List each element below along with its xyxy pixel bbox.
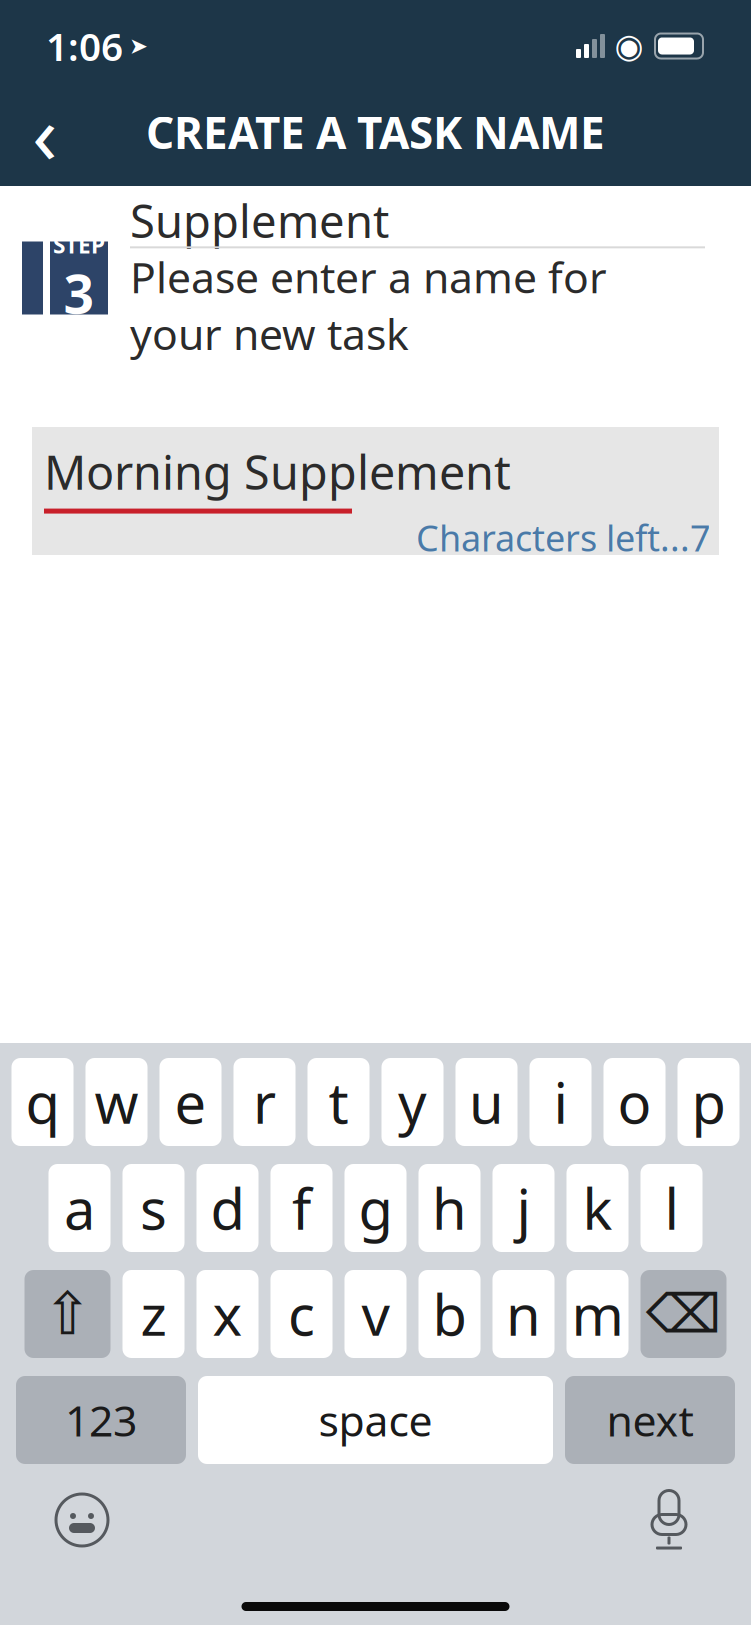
button[interactable]: s	[122, 1164, 184, 1252]
button[interactable]: Back	[8, 92, 82, 172]
staticText: n	[506, 1277, 541, 1351]
staticText: 123	[65, 1392, 137, 1448]
button[interactable]: u	[455, 1058, 517, 1146]
staticText: h	[432, 1171, 467, 1245]
staticText: ⌫	[646, 1284, 721, 1344]
button[interactable]: Morning Supplement	[32, 427, 719, 555]
staticText: space	[318, 1392, 432, 1448]
staticText: Morning Supplement	[44, 441, 511, 503]
button[interactable]: space	[198, 1376, 553, 1464]
button[interactable]: r	[233, 1058, 295, 1146]
staticText: m	[571, 1277, 623, 1351]
staticText: g	[358, 1171, 392, 1245]
button[interactable]: q	[11, 1058, 73, 1146]
staticText: z	[140, 1277, 166, 1351]
staticText: o	[617, 1065, 651, 1139]
button[interactable]: n	[492, 1270, 554, 1358]
button[interactable]: x	[196, 1270, 258, 1358]
button[interactable]: i	[529, 1058, 591, 1146]
staticText: STEP	[53, 229, 105, 260]
button[interactable]: t	[307, 1058, 369, 1146]
button[interactable]: z	[122, 1270, 184, 1358]
staticText: c	[288, 1277, 315, 1351]
button[interactable]: Delete	[640, 1270, 726, 1358]
button[interactable]: p	[677, 1058, 739, 1146]
staticText: ➤	[129, 33, 148, 59]
button[interactable]: d	[196, 1164, 258, 1252]
staticText: i	[553, 1065, 567, 1139]
button[interactable]: m	[566, 1270, 628, 1358]
staticText: l	[664, 1171, 678, 1245]
staticText: u	[469, 1065, 504, 1139]
staticText: r	[253, 1065, 276, 1139]
staticText: 1:06	[46, 20, 123, 72]
staticText: CREATE A TASK NAME	[146, 103, 605, 161]
button[interactable]: v	[344, 1270, 406, 1358]
staticText: y	[398, 1065, 427, 1139]
staticText: e	[174, 1065, 206, 1139]
button[interactable]: Emoji	[42, 1480, 122, 1560]
button[interactable]: g	[344, 1164, 406, 1252]
button[interactable]: c	[270, 1270, 332, 1358]
button[interactable]: a	[48, 1164, 110, 1252]
staticText: ‹	[32, 77, 58, 187]
staticText: Characters left...7	[416, 514, 711, 561]
button[interactable]: h	[418, 1164, 480, 1252]
staticText: f	[292, 1171, 311, 1245]
staticText: t	[328, 1065, 348, 1139]
button[interactable]: Next	[565, 1376, 735, 1464]
staticText: q	[25, 1065, 59, 1139]
staticText: Supplement	[130, 190, 389, 250]
staticText: s	[140, 1171, 167, 1245]
button[interactable]: l	[640, 1164, 702, 1252]
button[interactable]: k	[566, 1164, 628, 1252]
button[interactable]: j	[492, 1164, 554, 1252]
staticText: ⇧	[43, 1281, 92, 1347]
button[interactable]: Numbers	[16, 1376, 186, 1464]
staticText: p	[691, 1065, 725, 1139]
staticText: 3	[63, 258, 94, 328]
staticText: next	[606, 1392, 693, 1448]
staticText: k	[582, 1171, 612, 1245]
staticText: v	[361, 1277, 389, 1351]
staticText: d	[210, 1171, 244, 1245]
button[interactable]: Shift	[24, 1270, 110, 1358]
button[interactable]: b	[418, 1270, 480, 1358]
button[interactable]: f	[270, 1164, 332, 1252]
staticText: ◉	[614, 27, 643, 65]
staticText: a	[64, 1171, 95, 1245]
staticText: Please enter a name for your new task	[130, 248, 607, 362]
button[interactable]: Dictation	[629, 1480, 709, 1560]
staticText: b	[432, 1277, 466, 1351]
staticText: x	[212, 1277, 242, 1351]
button[interactable]: o	[603, 1058, 665, 1146]
staticText: j	[516, 1171, 530, 1245]
staticText: w	[94, 1065, 138, 1139]
button[interactable]: e	[159, 1058, 221, 1146]
button[interactable]: y	[381, 1058, 443, 1146]
button[interactable]: w	[85, 1058, 147, 1146]
